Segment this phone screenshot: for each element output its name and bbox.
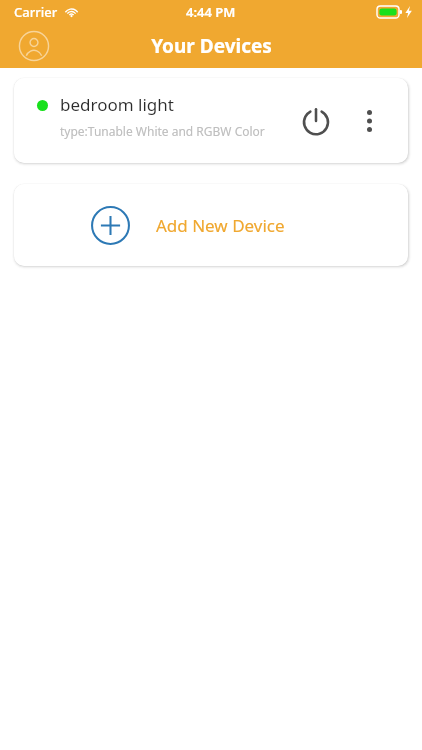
button[interactable]: More options — [352, 104, 386, 138]
staticText: Add New Device — [156, 214, 285, 237]
staticText: type:Tunable White and RGBW Color — [60, 123, 265, 139]
button[interactable]: Add New Device — [14, 184, 408, 266]
button[interactable]: bedroom light — [14, 78, 408, 163]
staticText: 4:44 PM — [186, 3, 236, 21]
staticText: bedroom light — [60, 93, 174, 116]
staticText: Carrier — [14, 3, 58, 21]
staticText: Your Devices — [151, 33, 272, 59]
button[interactable]: Account — [16, 28, 52, 64]
button[interactable]: Power toggle — [296, 101, 336, 141]
